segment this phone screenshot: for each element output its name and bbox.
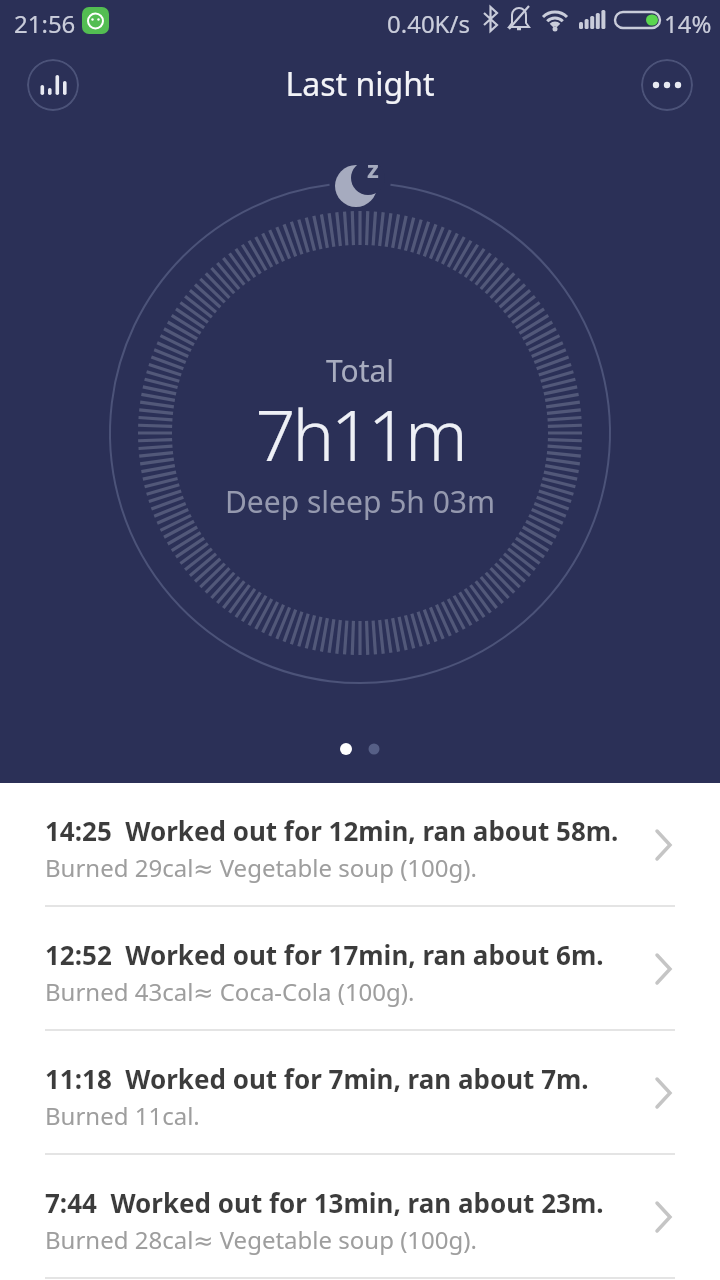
staticText: 0.40K/s (387, 7, 470, 40)
button[interactable]: 11:18 Worked out for 7min, ran about 7m. (0, 1031, 720, 1155)
button[interactable] (27, 59, 79, 111)
staticText: 14% (664, 7, 712, 40)
staticText: 14:25 Worked out for 12min, ran about 58… (45, 813, 619, 848)
staticText: Burned 11cal. (45, 1099, 200, 1132)
staticText: Total (0, 350, 720, 391)
button[interactable] (641, 59, 693, 111)
staticText: z (367, 152, 379, 185)
staticText: 21:56 (14, 7, 76, 40)
staticText: 7:44 Worked out for 13min, ran about 23m… (45, 1185, 604, 1220)
button[interactable]: 7:44 Worked out for 13min, ran about 23m… (0, 1155, 720, 1279)
staticText: Burned 29cal≈ Vegetable soup (100g). (45, 851, 477, 884)
button[interactable]: 14:25 Worked out for 12min, ran about 58… (0, 783, 720, 907)
staticText: Burned 43cal≈ Coca-Cola (100g). (45, 975, 415, 1008)
staticText: Last night (0, 62, 720, 106)
staticText: 7h11m (0, 386, 720, 481)
staticText: Deep sleep 5h 03m (0, 481, 720, 522)
staticText: 12:52 Worked out for 17min, ran about 6m… (45, 937, 604, 972)
button[interactable]: 12:52 Worked out for 17min, ran about 6m… (0, 907, 720, 1031)
staticText: Burned 28cal≈ Vegetable soup (100g). (45, 1223, 477, 1256)
staticText: 11:18 Worked out for 7min, ran about 7m. (45, 1061, 589, 1096)
